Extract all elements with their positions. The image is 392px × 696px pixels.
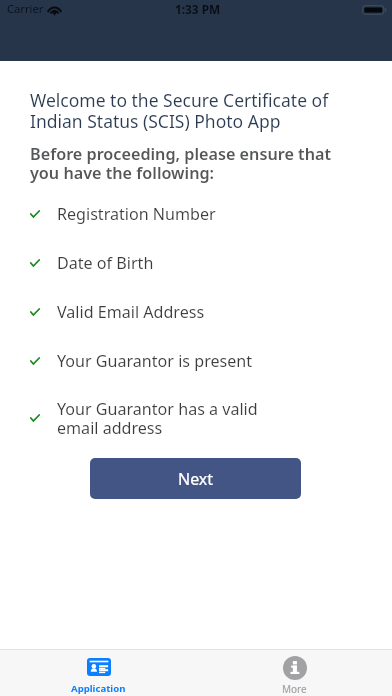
staticText: Before proceeding, please ensure that yo… <box>30 143 337 183</box>
staticText: More <box>282 682 307 696</box>
staticText: Welcome to the Secure Certificate of Ind… <box>30 88 335 133</box>
button[interactable]: Next <box>90 458 301 499</box>
staticText: Your Guarantor is present <box>57 350 253 372</box>
button[interactable]: Registration Number <box>0 202 392 226</box>
staticText: Next <box>178 468 214 490</box>
button[interactable]: Your Guarantor is present <box>0 349 392 373</box>
button[interactable]: Your Guarantor has a valid email address <box>0 394 392 442</box>
staticText: Carrier <box>7 1 44 16</box>
button[interactable]: Application <box>0 650 196 696</box>
button[interactable]: Date of Birth <box>0 251 392 275</box>
staticText: Registration Number <box>57 203 216 225</box>
staticText: Your Guarantor has a valid email address <box>57 398 258 439</box>
staticText: Valid Email Address <box>57 301 205 323</box>
button[interactable]: Valid Email Address <box>0 300 392 324</box>
staticText: Application <box>71 682 126 695</box>
staticText: Date of Birth <box>57 252 154 274</box>
staticText: 1:33 PM <box>175 1 221 17</box>
button[interactable]: More <box>196 650 392 696</box>
